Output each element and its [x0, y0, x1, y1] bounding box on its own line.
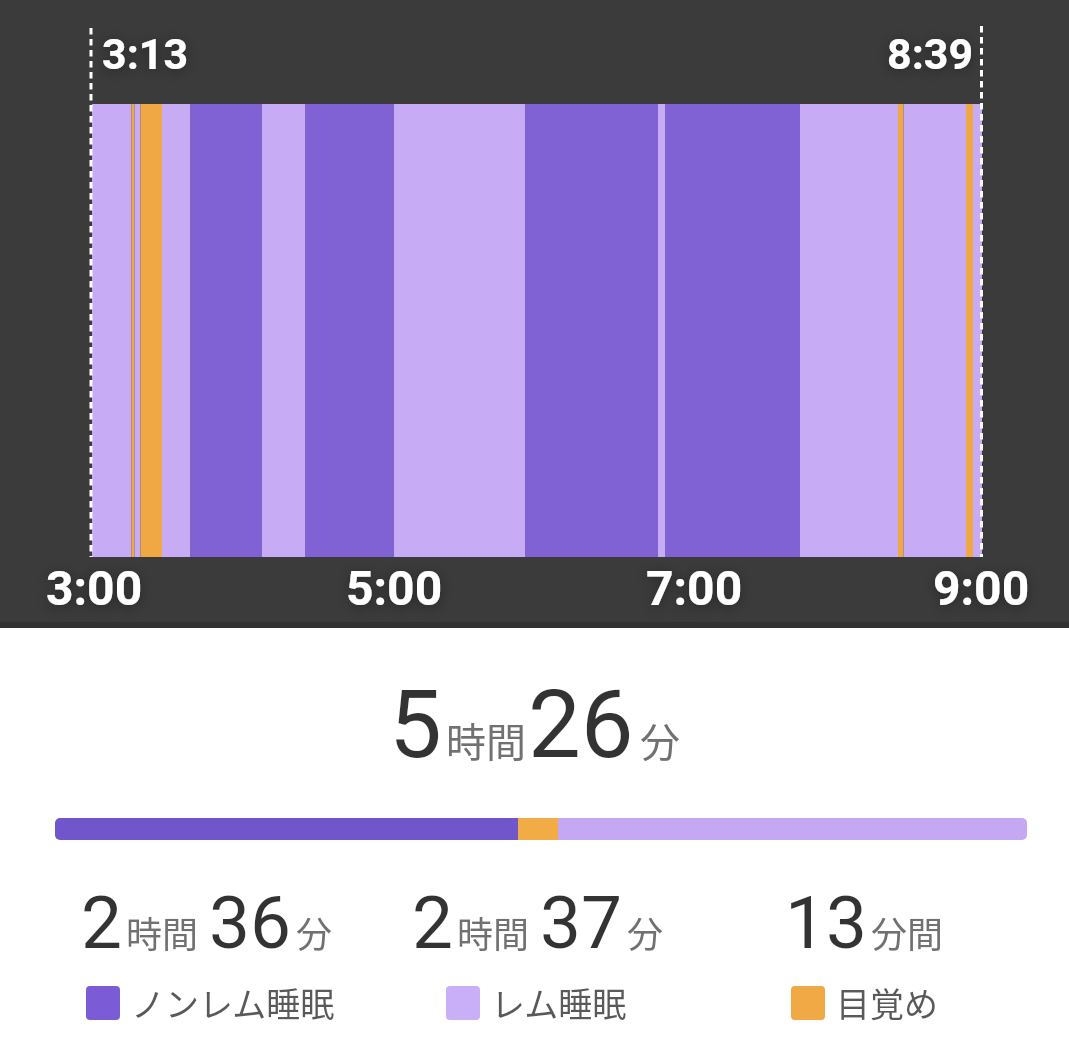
staticText: 36: [209, 880, 292, 966]
staticText: 7:00: [646, 560, 743, 616]
staticText: 2: [412, 880, 454, 966]
staticText: レム睡眠: [491, 978, 627, 1027]
staticText: 13: [785, 880, 868, 966]
staticText: 2: [81, 880, 123, 966]
staticText: 時間: [457, 906, 530, 958]
staticText: 目覚め: [836, 978, 938, 1027]
staticText: 分: [640, 711, 680, 769]
staticText: 分: [627, 906, 664, 958]
staticText: 37: [540, 880, 623, 966]
staticText: 3:13: [102, 29, 189, 79]
staticText: 5:00: [346, 560, 443, 616]
staticText: 9:00: [933, 560, 1030, 616]
staticText: 時間: [446, 711, 526, 769]
staticText: 3:00: [46, 560, 143, 616]
staticText: 分: [296, 906, 333, 958]
staticText: ノンレム睡眠: [131, 978, 335, 1027]
staticText: 26: [528, 670, 634, 780]
staticText: 5: [389, 670, 442, 780]
staticText: 分間: [871, 906, 944, 958]
staticText: 8:39: [887, 29, 974, 79]
staticText: 時間: [126, 906, 199, 958]
